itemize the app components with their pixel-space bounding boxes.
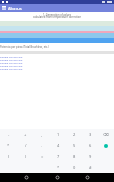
button[interactable]: 3 <box>82 129 98 140</box>
button[interactable] <box>98 140 114 151</box>
staticText: * <box>7 143 10 148</box>
button[interactable]: ) <box>17 151 34 162</box>
button[interactable]: 7 <box>50 151 66 162</box>
staticText: 6 <box>89 143 92 148</box>
staticText: sample link text line <box>0 61 23 64</box>
button[interactable]: # <box>82 162 98 173</box>
staticText: , <box>41 132 43 137</box>
button[interactable]: Recents <box>83 173 92 182</box>
button[interactable]: 0 <box>66 162 82 173</box>
button[interactable]: 8 <box>66 151 82 162</box>
staticText: 8 <box>73 154 76 159</box>
staticText: 0 <box>73 165 76 170</box>
staticText: sample link text line <box>0 64 23 67</box>
button[interactable]: 2 <box>66 129 82 140</box>
button[interactable]: 6 <box>82 140 98 151</box>
staticText: sample link text line <box>0 58 23 61</box>
button[interactable]: , <box>34 129 50 140</box>
staticText: 2 <box>73 132 76 137</box>
staticText: ⌫ <box>103 132 109 137</box>
button[interactable]: * <box>50 162 66 173</box>
button[interactable]: + <box>17 129 34 140</box>
button[interactable]: ⌫ <box>98 129 114 140</box>
button[interactable]: * <box>0 140 17 151</box>
staticText: # <box>89 165 92 170</box>
button[interactable]: 4 <box>50 140 66 151</box>
staticText: / <box>25 143 27 148</box>
staticText: 9 <box>89 154 92 159</box>
staticText: * <box>57 165 60 170</box>
staticText: sample link text line <box>0 67 23 70</box>
staticText: ( <box>8 154 10 159</box>
button[interactable]: ( <box>0 151 17 162</box>
staticText: sample link text line <box>0 55 23 58</box>
staticText: 1. Generation of values calculated from … <box>0 13 114 19</box>
staticText: Abacus <box>8 6 22 11</box>
staticText: Potencia por pieza (Total Brushless, etc… <box>0 45 49 49</box>
staticText: 4 <box>57 143 60 148</box>
button[interactable]: 9 <box>82 151 98 162</box>
button[interactable]: / <box>17 140 34 151</box>
staticText: 5 <box>73 143 76 148</box>
button[interactable]: Menu <box>0 4 8 12</box>
button[interactable]: = <box>34 151 50 162</box>
staticText: . <box>41 143 43 148</box>
staticText: - <box>8 132 10 137</box>
staticText: 3 <box>89 132 92 137</box>
staticText: 1 <box>57 132 60 137</box>
staticText: ) <box>25 154 27 159</box>
staticText: 7 <box>57 154 60 159</box>
staticText: + <box>24 132 27 137</box>
button[interactable]: 5 <box>66 140 82 151</box>
button[interactable]: Back <box>22 173 31 182</box>
button[interactable]: Home <box>53 173 62 182</box>
staticText: = <box>41 154 44 159</box>
button[interactable]: 1 <box>50 129 66 140</box>
